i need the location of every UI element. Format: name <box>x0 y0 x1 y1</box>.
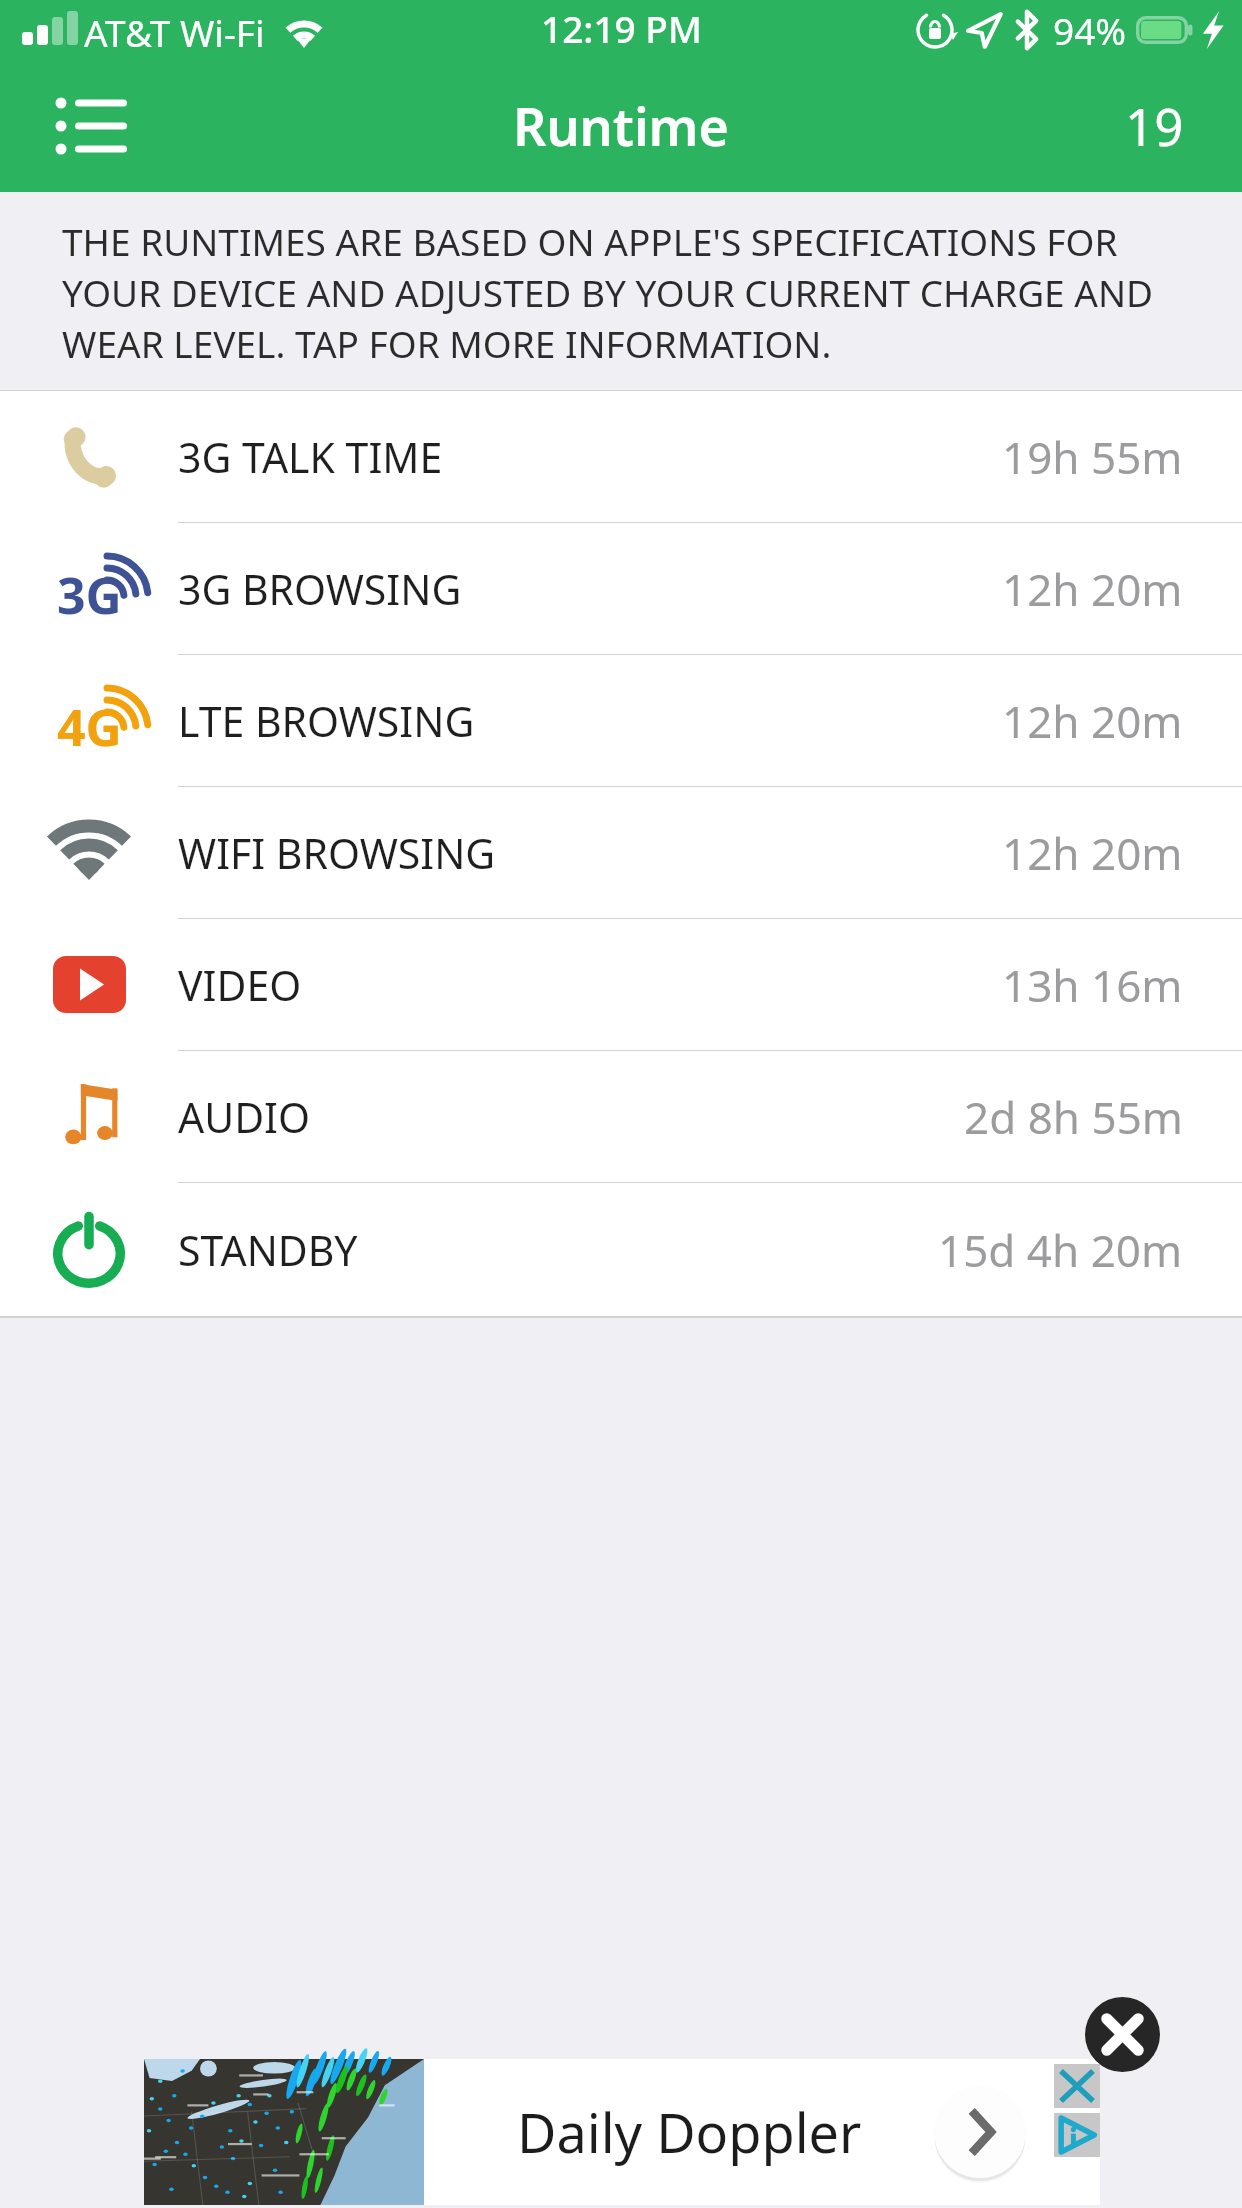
staticText: Daily Doppler <box>517 2095 862 2169</box>
button[interactable]: THE RUNTIMES ARE BASED ON APPLE'S SPECIF… <box>0 192 1242 390</box>
staticText: VIDEO <box>178 957 302 1013</box>
staticText: 12h 20m <box>1002 559 1183 619</box>
staticText: 12:19 PM <box>541 3 702 53</box>
button[interactable]: VIDEO <box>0 919 1242 1051</box>
button[interactable]: Menu <box>30 79 140 171</box>
staticText: LTE BROWSING <box>178 693 475 749</box>
staticText: WIFI BROWSING <box>178 825 496 881</box>
button[interactable]: WIFI BROWSING <box>0 787 1242 919</box>
staticText: THE RUNTIMES ARE BASED ON APPLE'S SPECIF… <box>62 216 1186 369</box>
staticText: 15d 4h 20m <box>938 1220 1183 1280</box>
staticText: AUDIO <box>178 1089 311 1145</box>
button[interactable]: 3G <box>0 523 1242 655</box>
staticText: 12h 20m <box>1002 823 1183 883</box>
staticText: 19 <box>1125 91 1184 160</box>
button[interactable]: AUDIO <box>0 1051 1242 1183</box>
button[interactable]: 4G <box>0 655 1242 787</box>
staticText: 2d 8h 55m <box>964 1087 1183 1147</box>
staticText: Runtime <box>513 90 729 161</box>
staticText: 3G TALK TIME <box>178 429 443 485</box>
button[interactable]: Close ad <box>1085 1997 1160 2072</box>
staticText: AT&T Wi-Fi <box>84 7 265 57</box>
staticText: STANDBY <box>178 1222 358 1278</box>
staticText: 3G BROWSING <box>178 561 462 617</box>
staticText: 19h 55m <box>1002 427 1183 487</box>
staticText: 4G <box>57 693 122 757</box>
staticText: 94% <box>1053 5 1127 55</box>
staticText: 13h 16m <box>1002 955 1183 1015</box>
button[interactable]: STANDBY <box>0 1183 1242 1316</box>
staticText: 12h 20m <box>1002 691 1183 751</box>
staticText: 3G <box>57 561 122 625</box>
button[interactable]: Open ad <box>934 2086 1026 2178</box>
button[interactable]: Battery level 19 <box>1125 91 1184 160</box>
button[interactable]: 3G TALK TIME <box>0 391 1242 523</box>
